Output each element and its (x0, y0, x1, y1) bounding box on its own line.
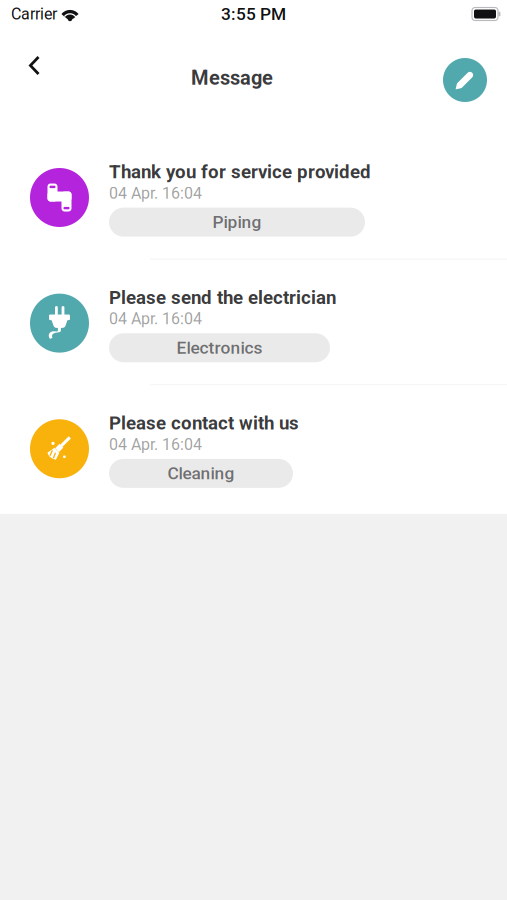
staticText: Please contact with us (109, 412, 299, 434)
staticText: Please send the electrician (109, 287, 336, 308)
staticText: Carrier (11, 5, 57, 23)
button[interactable]: Please send the electrician (0, 287, 507, 362)
staticText: 04 Apr. 16:04 (109, 184, 202, 203)
staticText: Piping (212, 212, 261, 232)
button[interactable]: Compose (443, 52, 487, 102)
staticText: 3:55 PM (221, 4, 286, 24)
staticText: 04 Apr. 16:04 (109, 309, 202, 328)
button[interactable]: Thank you for service provided (0, 161, 507, 237)
staticText: Message (191, 66, 273, 90)
staticText: Cleaning (167, 463, 234, 483)
button[interactable]: Back (14, 52, 54, 104)
button[interactable]: Please contact with us (0, 412, 507, 488)
staticText: Thank you for service provided (109, 161, 371, 183)
staticText: Electronics (176, 338, 262, 358)
staticText: 04 Apr. 16:04 (109, 435, 202, 454)
